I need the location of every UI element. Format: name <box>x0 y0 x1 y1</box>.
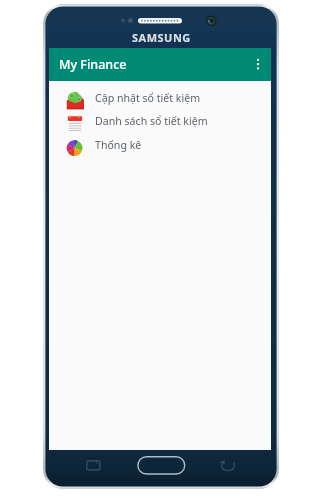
button[interactable]: Danh sách sổ tiết kiệm <box>49 110 271 134</box>
staticText: Danh sách sổ tiết kiệm <box>95 114 208 128</box>
staticText: Thống kê <box>95 138 142 152</box>
button[interactable]: Cập nhật sổ tiết kiệm <box>49 87 271 111</box>
staticText: My Finance <box>59 56 127 73</box>
staticText: Cập nhật sổ tiết kiệm <box>95 91 201 105</box>
button[interactable]: My Finance <box>49 48 271 81</box>
button[interactable]: Thống kê <box>49 134 271 158</box>
button[interactable]: More options <box>244 51 272 79</box>
staticText: SAMSUNG <box>132 30 191 45</box>
